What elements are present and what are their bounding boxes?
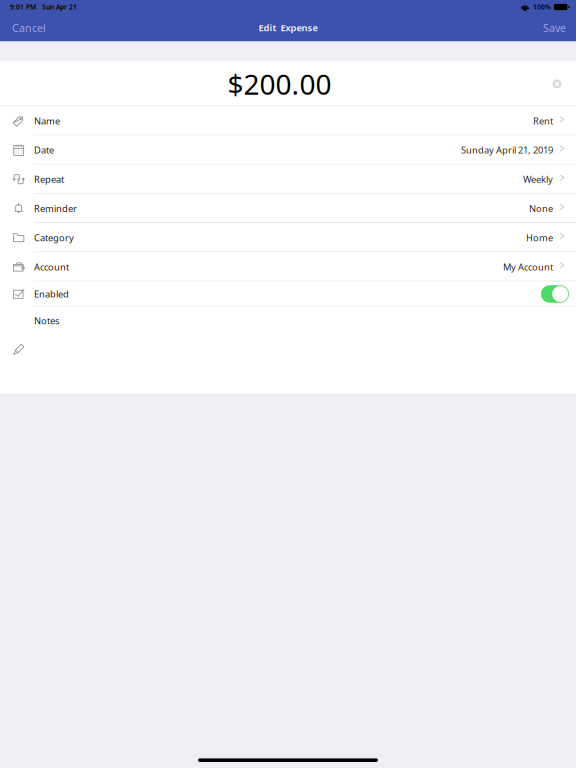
staticText: Save xyxy=(543,21,566,35)
button[interactable]: Account xyxy=(0,252,576,281)
staticText: Sunday April 21, 2019 xyxy=(461,144,553,156)
button[interactable]: Reminder xyxy=(0,194,576,223)
staticText: Category xyxy=(34,231,74,244)
staticText: Rent xyxy=(533,115,553,127)
staticText: Reminder xyxy=(34,202,77,215)
staticText: 100% xyxy=(533,3,551,11)
button[interactable]: Name xyxy=(0,106,576,135)
staticText: Home xyxy=(526,231,553,244)
staticText: Name xyxy=(34,115,60,127)
staticText: None xyxy=(529,202,553,215)
staticText: 9:01 PM xyxy=(10,3,36,11)
staticText: Date xyxy=(34,144,54,156)
staticText: $200.00 xyxy=(227,65,331,102)
button[interactable]: Category xyxy=(0,223,576,252)
staticText: Sun Apr 21 xyxy=(42,3,77,11)
button[interactable]: Repeat xyxy=(0,165,576,194)
button[interactable]: Cancel xyxy=(6,14,52,41)
staticText: Cancel xyxy=(12,21,46,35)
staticText: Enabled xyxy=(34,288,69,300)
button[interactable]: Clear amount xyxy=(546,73,568,95)
button[interactable]: Save xyxy=(537,14,572,41)
button[interactable]: Enabled xyxy=(0,281,576,307)
staticText: Notes xyxy=(34,314,59,327)
button[interactable]: Notes xyxy=(0,307,576,393)
staticText: Repeat xyxy=(34,173,64,185)
staticText: My Account xyxy=(503,261,553,273)
staticText: Weekly xyxy=(523,173,553,185)
staticText: Edit Expense xyxy=(258,22,317,34)
button[interactable]: Date xyxy=(0,135,576,165)
staticText: Account xyxy=(34,261,69,273)
